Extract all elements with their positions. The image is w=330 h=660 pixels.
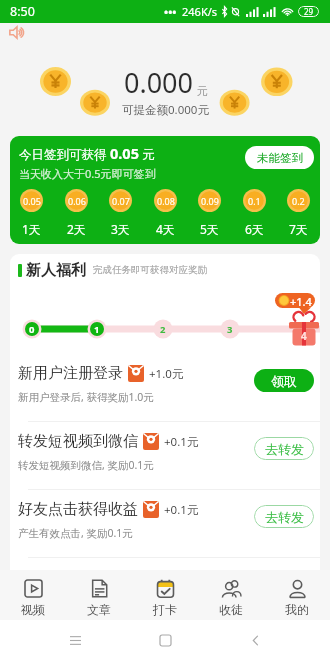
button[interactable]: 转发短视频到微信 [10, 422, 320, 489]
staticText: +1.4 [290, 294, 312, 309]
staticText: 新用户登录后, 获得奖励1.0元 [18, 390, 154, 404]
button[interactable]: 新用户注册登录 [10, 354, 320, 421]
button[interactable]: Home [150, 625, 180, 655]
button[interactable]: 好友点击获得收益 [10, 490, 320, 557]
staticText: 4 [301, 329, 307, 343]
button[interactable]: 打卡 [132, 570, 198, 620]
staticText: 0.07 [112, 195, 130, 207]
button[interactable]: 视频 [0, 570, 66, 620]
staticText: 6天 [245, 221, 264, 237]
button[interactable]: 0.07 [109, 189, 132, 237]
staticText: 3天 [111, 221, 130, 237]
button[interactable]: 0.09 [198, 189, 221, 237]
staticText: 7天 [289, 221, 308, 237]
button[interactable]: 文章 [66, 570, 132, 620]
staticText: 0.05 [23, 195, 41, 207]
staticText: 打卡 [153, 602, 177, 617]
staticText: 0.2 [292, 195, 305, 207]
staticText: +0.1元 [164, 502, 199, 518]
staticText: 元 [139, 146, 155, 163]
staticText: 2天 [67, 221, 86, 237]
staticText: 领取 [271, 373, 297, 389]
staticText: 转发短视频到微信 [18, 432, 138, 451]
staticText: 未能签到 [257, 151, 303, 165]
staticText: 今日签到可获得 [19, 146, 110, 163]
button[interactable]: 去转发 [254, 437, 314, 460]
staticText: 0.09 [201, 195, 219, 207]
staticText: 0.08 [157, 195, 175, 207]
staticText: 5天 [200, 221, 219, 237]
staticText: 可提金额0.000元 [122, 102, 209, 118]
staticText: 我的 [285, 602, 309, 617]
staticText: 8:50 [10, 3, 35, 20]
button[interactable]: 0.06 [65, 189, 88, 237]
button[interactable]: Back [240, 625, 270, 655]
staticText: 文章 [87, 602, 111, 617]
button[interactable]: 去转发 [254, 505, 314, 528]
staticText: 完成任务即可获得对应奖励 [93, 264, 207, 276]
button[interactable]: Recents [60, 625, 90, 655]
button[interactable]: 0.1 [243, 189, 266, 237]
staticText: 视频 [21, 602, 45, 617]
staticText: 0.05 [110, 143, 139, 163]
staticText: 3 [227, 323, 233, 336]
button[interactable]: Reward gift [271, 286, 319, 346]
staticText: 29 [304, 6, 314, 17]
staticText: 元 [197, 84, 208, 98]
staticText: 产生有效点击, 奖励0.1元 [18, 526, 133, 540]
staticText: +1.0元 [149, 366, 184, 382]
staticText: 4天 [156, 221, 175, 237]
button[interactable]: 收徒 [198, 570, 264, 620]
button[interactable]: 0.08 [154, 189, 177, 237]
staticText: 0.06 [68, 195, 86, 207]
staticText: ••• [164, 4, 177, 19]
button[interactable]: 领取 [254, 369, 314, 392]
button[interactable]: Announcement [9, 26, 26, 39]
button[interactable]: 我的 [264, 570, 330, 620]
button[interactable]: 0.2 [287, 189, 310, 237]
staticText: 转发短视频到微信, 奖励0.1元 [18, 458, 154, 472]
staticText: 0 [29, 323, 35, 336]
staticText: 2 [160, 323, 166, 336]
staticText: 好友点击获得收益 [18, 500, 138, 519]
staticText: 246K/s [182, 4, 218, 19]
button[interactable]: 未能签到 [245, 146, 314, 169]
staticText: 0.1 [248, 195, 261, 207]
staticText: 收徒 [219, 602, 243, 617]
staticText: 去转发 [265, 509, 304, 525]
staticText: 去转发 [265, 441, 304, 457]
staticText: 0.000 [124, 64, 194, 101]
staticText: +0.1元 [164, 434, 199, 450]
staticText: 1 [94, 323, 100, 336]
staticText: 1天 [22, 221, 41, 237]
staticText: 新人福利 [26, 261, 86, 280]
staticText: 当天收入大于0.5元即可签到 [19, 166, 156, 181]
staticText: 新用户注册登录 [18, 364, 123, 383]
button[interactable]: 0.05 [20, 189, 43, 237]
